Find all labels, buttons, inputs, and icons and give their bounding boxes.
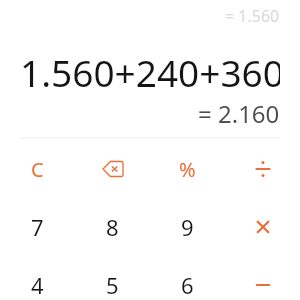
button[interactable]: C xyxy=(0,140,75,198)
staticText: 7 xyxy=(31,212,44,242)
staticText: = 2.160 xyxy=(198,97,280,127)
staticText: 6 xyxy=(181,270,194,300)
staticText: 9 xyxy=(181,212,194,242)
staticText: % xyxy=(179,156,196,183)
button[interactable]: 9 xyxy=(150,198,225,256)
button[interactable]: 7 xyxy=(0,198,75,256)
button[interactable]: = 1.560 xyxy=(0,0,300,32)
staticText: 4 xyxy=(31,270,44,300)
staticText: 5 xyxy=(106,270,119,300)
staticText: 8 xyxy=(106,212,119,242)
button[interactable]: Minus xyxy=(225,256,300,300)
button[interactable]: Divide xyxy=(225,140,300,198)
button[interactable]: % xyxy=(150,140,225,198)
button[interactable]: 5 xyxy=(75,256,150,300)
button[interactable]: 8 xyxy=(75,198,150,256)
staticText: C xyxy=(31,156,44,183)
button[interactable]: 6 xyxy=(150,256,225,300)
button[interactable]: 4 xyxy=(0,256,75,300)
button[interactable]: Multiply xyxy=(225,198,300,256)
button[interactable]: Backspace xyxy=(75,140,150,198)
staticText: 1.560+240+360 xyxy=(20,47,280,95)
staticText: = 1.560 xyxy=(225,5,280,27)
